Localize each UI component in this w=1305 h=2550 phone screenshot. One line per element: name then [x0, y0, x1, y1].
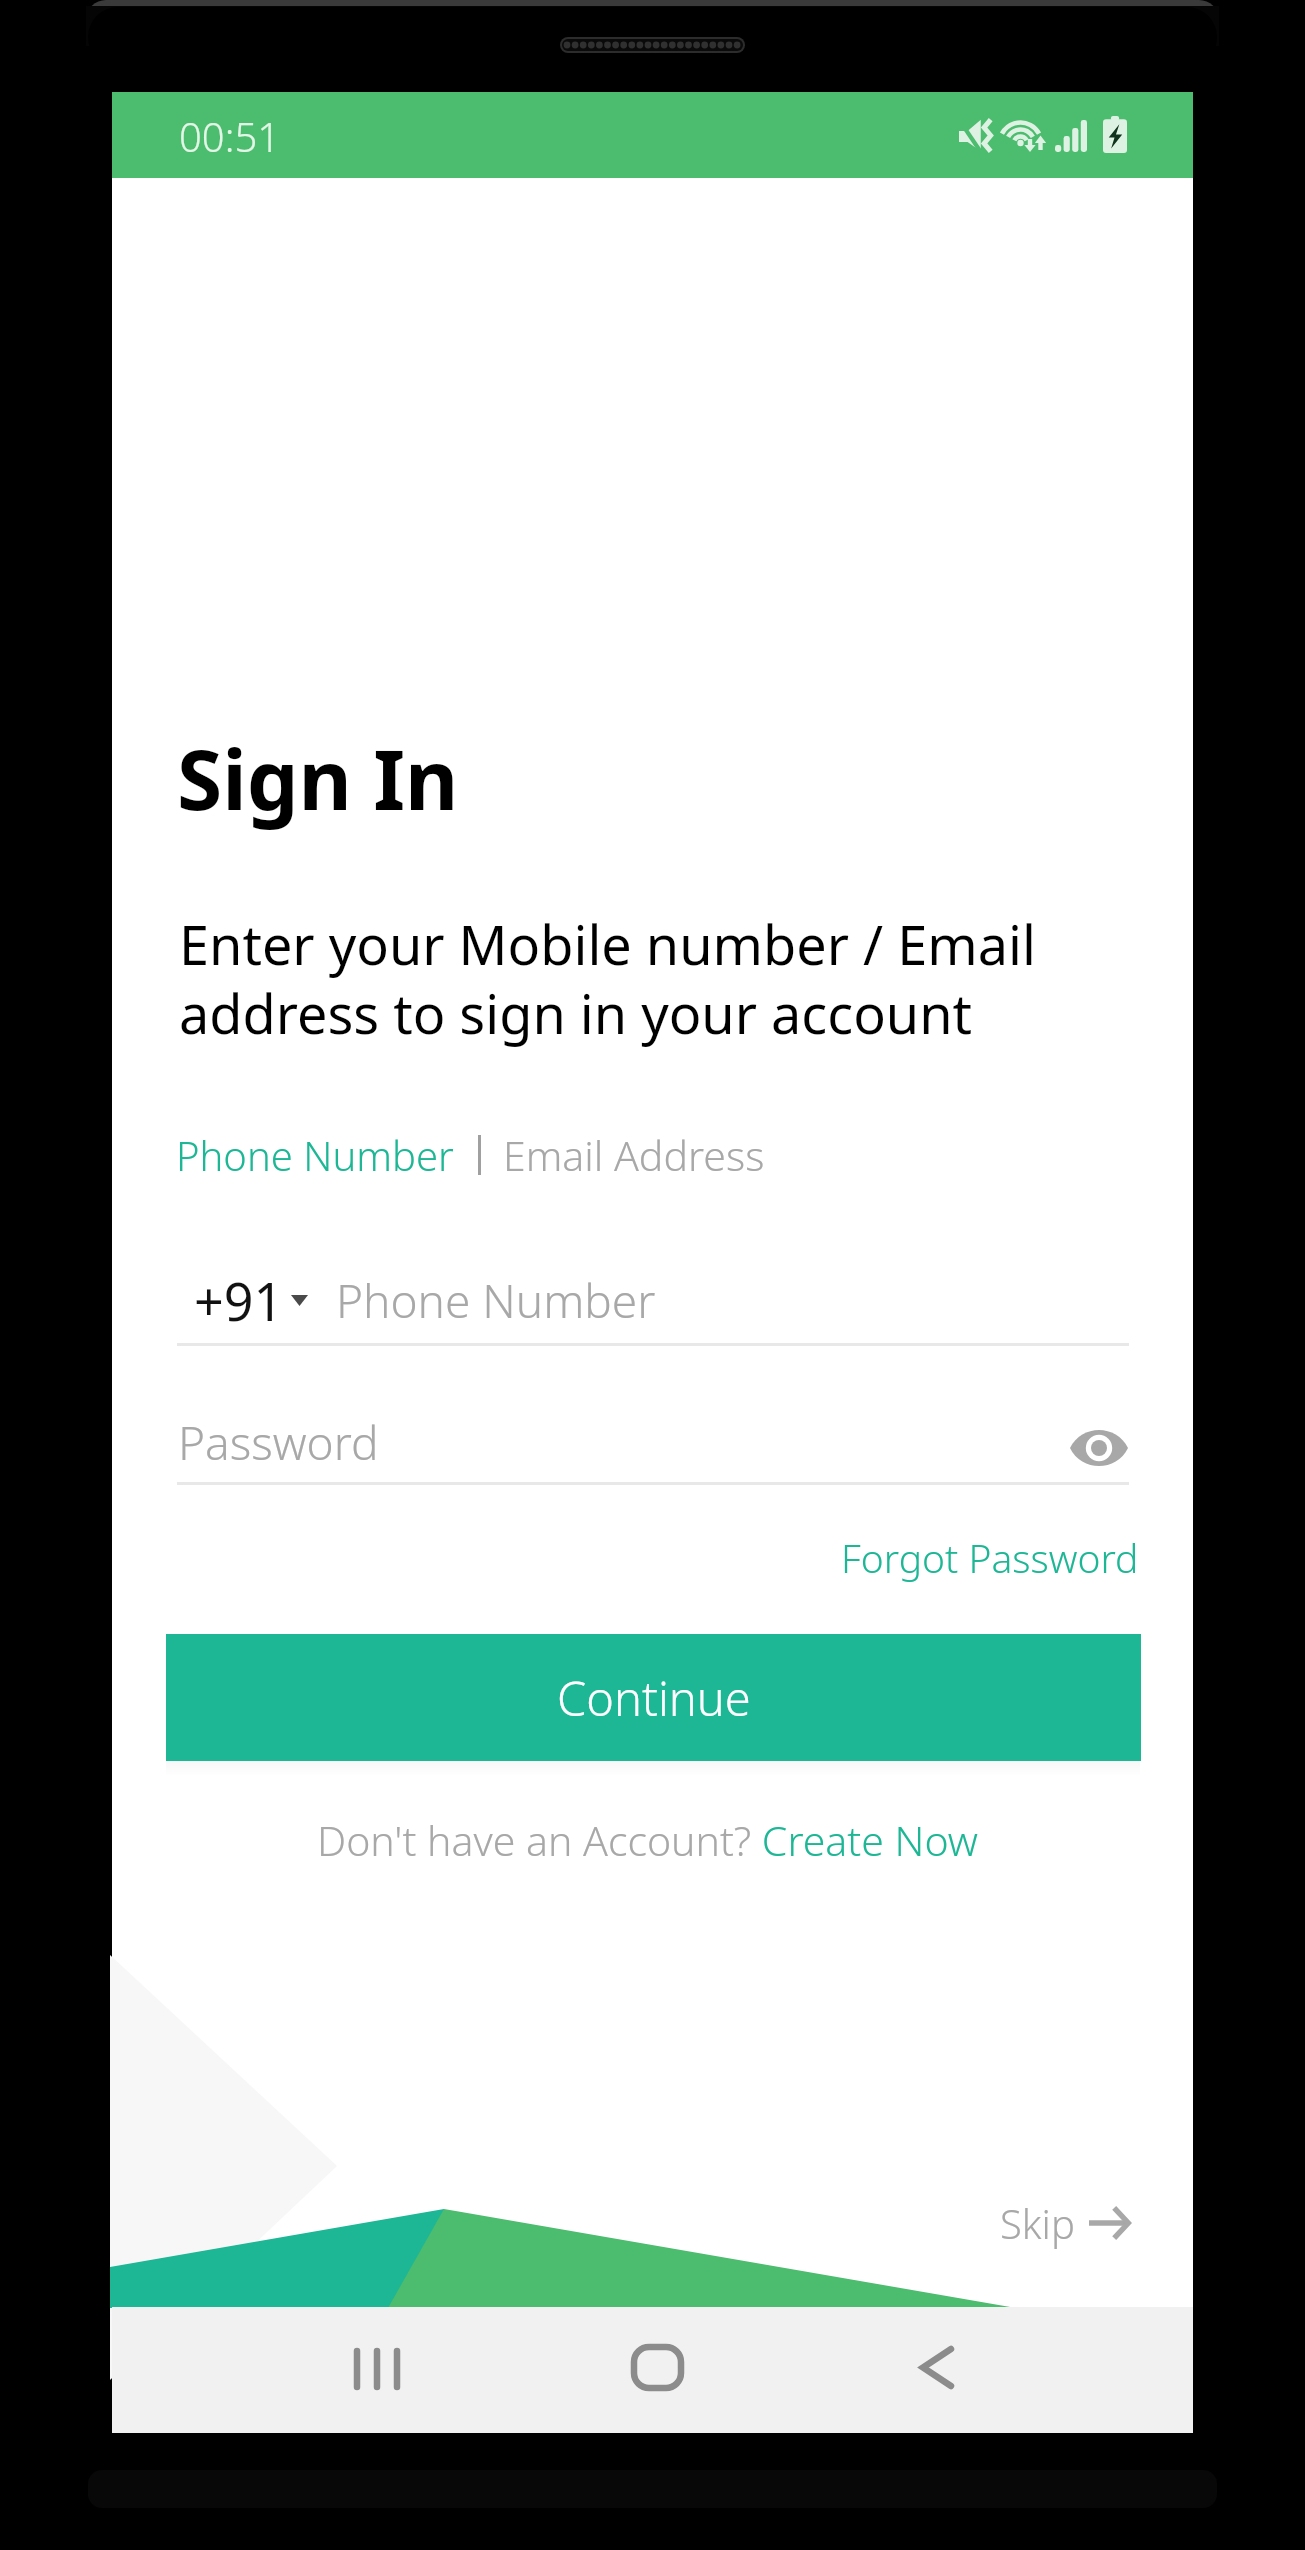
- staticText: Enter your Mobile number / Email address…: [179, 911, 1036, 1049]
- staticText: Continue: [557, 1666, 751, 1730]
- button[interactable]: Phone Number: [176, 1128, 454, 1182]
- staticText: Skip: [1000, 2196, 1075, 2250]
- staticText: Phone Number: [336, 1269, 656, 1332]
- staticText: Email Address: [503, 1127, 765, 1183]
- button[interactable]: Recent apps: [311, 2307, 441, 2433]
- staticText: Password: [178, 1411, 379, 1474]
- button[interactable]: Forgot Password: [821, 1517, 1159, 1597]
- button[interactable]: Home: [592, 2307, 722, 2433]
- staticText: 00:51: [179, 109, 281, 163]
- staticText: Forgot Password: [841, 1531, 1139, 1584]
- button[interactable]: Skip: [980, 2174, 1150, 2256]
- staticText: Sign In: [177, 722, 459, 834]
- button[interactable]: Continue: [166, 1634, 1141, 1761]
- button[interactable]: Don't have an Account? Create Now: [297, 1803, 997, 1877]
- staticText: +91: [194, 1265, 284, 1336]
- button[interactable]: Show password: [1060, 1418, 1138, 1478]
- button[interactable]: Back: [872, 2307, 1002, 2433]
- button[interactable]: Email Address: [503, 1127, 765, 1183]
- staticText: Phone Number: [176, 1128, 454, 1182]
- staticText: Don't have an Account? Create Now: [317, 1812, 978, 1868]
- button[interactable]: +91: [194, 1265, 308, 1336]
